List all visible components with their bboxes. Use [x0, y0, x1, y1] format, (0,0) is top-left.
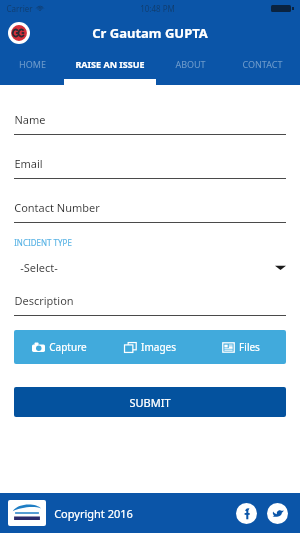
button[interactable]: AppSmart logo [8, 500, 46, 526]
staticText: Files [239, 340, 260, 354]
button[interactable]: SUBMIT [14, 387, 286, 417]
staticText: ABOUT [175, 58, 206, 70]
button[interactable]: Images [104, 340, 195, 354]
staticText: Name [14, 112, 46, 127]
staticText: Cr Gautam GUPTA [92, 24, 208, 42]
button[interactable]: ABOUT [156, 49, 225, 85]
staticText: -Select- [20, 260, 58, 275]
staticText: Description [14, 293, 74, 308]
staticText: Email [14, 156, 43, 171]
button[interactable]: Files [195, 340, 286, 354]
staticText: INCIDENT TYPE [14, 237, 72, 248]
staticText: Images [141, 340, 176, 354]
button[interactable]: Description [14, 293, 286, 316]
button[interactable]: Twitter [267, 503, 288, 524]
staticText: SUBMIT [129, 395, 171, 410]
staticText: RAISE AN ISSUE [75, 58, 145, 70]
button[interactable]: HOME [0, 49, 64, 85]
button[interactable]: RAISE AN ISSUE [64, 49, 156, 85]
button[interactable]: -Select- [14, 260, 286, 275]
button[interactable]: Email [14, 156, 286, 179]
button[interactable]: App logo [8, 22, 30, 44]
staticText: Carrier [6, 3, 33, 14]
staticText: Contact Number [14, 200, 100, 215]
staticText: HOME [19, 58, 46, 70]
staticText: Capture [49, 340, 87, 354]
staticText: 10:48 PM [140, 3, 175, 14]
button[interactable]: Capture [14, 340, 104, 354]
button[interactable]: Contact Number [14, 200, 286, 223]
button[interactable]: Facebook [236, 503, 257, 524]
button[interactable]: CONTACT [225, 49, 300, 85]
staticText: Copyright 2016 [54, 506, 133, 521]
button[interactable]: Name [14, 112, 286, 135]
staticText: CONTACT [242, 58, 283, 70]
